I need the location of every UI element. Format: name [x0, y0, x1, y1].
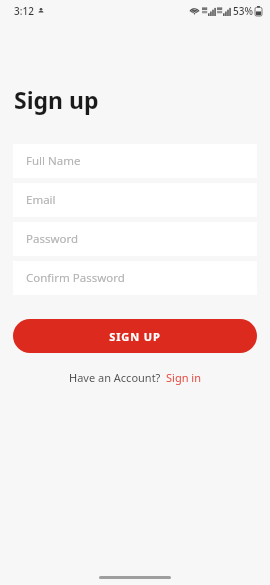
- staticText: Password: [26, 231, 79, 247]
- staticText: 3:12: [14, 4, 34, 18]
- staticText: Have an Account?: [69, 370, 161, 385]
- staticText: Sign in: [166, 370, 201, 385]
- button[interactable]: SIGN UP: [13, 319, 257, 353]
- other: Home gesture bar: [99, 576, 171, 579]
- button[interactable]: Password: [13, 222, 257, 256]
- button[interactable]: Sign in: [166, 370, 201, 385]
- staticText: Email: [26, 192, 56, 208]
- staticText: Confirm Password: [26, 270, 125, 286]
- button[interactable]: Full Name: [13, 144, 257, 178]
- button[interactable]: Email: [13, 183, 257, 217]
- staticText: SIGN UP: [109, 329, 161, 344]
- staticText: Sign up: [14, 84, 99, 115]
- staticText: Full Name: [26, 153, 81, 169]
- staticText: 53%: [233, 4, 253, 18]
- button[interactable]: Confirm Password: [13, 261, 257, 295]
